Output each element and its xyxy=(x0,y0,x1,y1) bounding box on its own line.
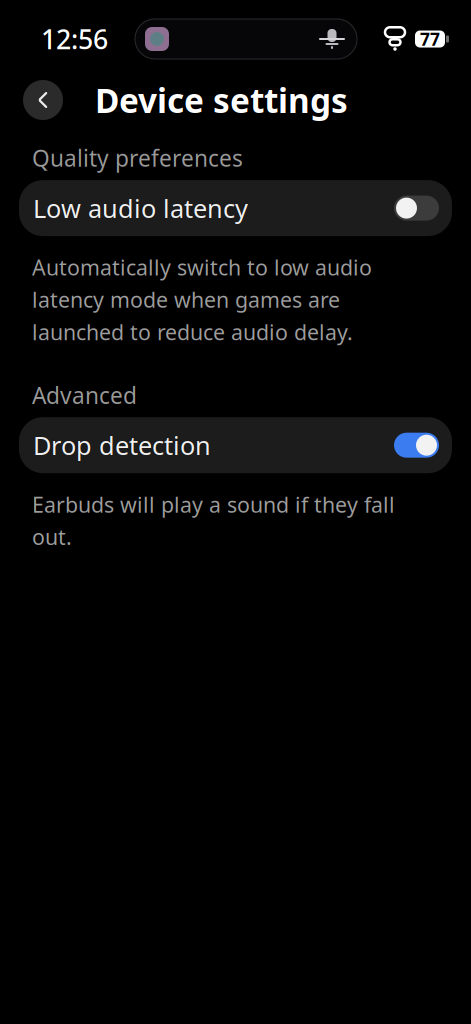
staticText: Advanced xyxy=(32,380,137,410)
staticText: Quality preferences xyxy=(32,143,243,173)
staticText: 77 xyxy=(420,27,440,50)
button[interactable]: Back xyxy=(23,80,63,120)
staticText: Low audio latency xyxy=(33,191,248,225)
staticText: Device settings xyxy=(95,78,348,122)
staticText: Earbuds will play a sound if they fall o… xyxy=(32,490,395,551)
staticText: Drop detection xyxy=(33,428,211,462)
button[interactable]: Low audio latency xyxy=(19,180,452,236)
staticText: 12:56 xyxy=(41,21,108,57)
staticText: Automatically switch to low audio latenc… xyxy=(32,253,372,346)
button[interactable]: Drop detection xyxy=(19,417,452,473)
